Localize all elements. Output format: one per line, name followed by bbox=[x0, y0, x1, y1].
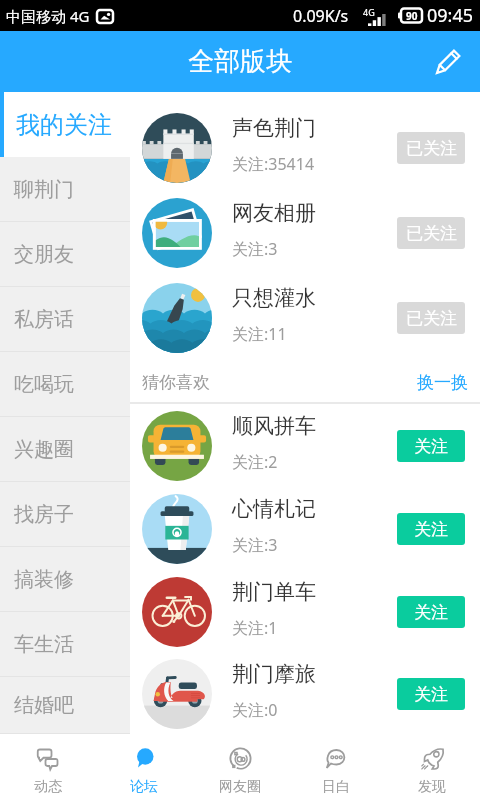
staticText: 关注:11 bbox=[232, 323, 287, 345]
button[interactable]: 我的关注 bbox=[0, 92, 130, 157]
staticText: 关注:3 bbox=[232, 534, 278, 556]
staticText: 关注 bbox=[414, 436, 448, 457]
staticText: 心情札记 bbox=[232, 496, 316, 522]
button[interactable]: 已关注 bbox=[397, 132, 465, 164]
button[interactable]: 关注 bbox=[397, 430, 465, 462]
button[interactable]: 吃喝玩 bbox=[0, 352, 130, 417]
button[interactable]: 荆门单车 bbox=[130, 570, 480, 653]
staticText: 荆门单车 bbox=[232, 579, 316, 605]
button[interactable]: 搞装修 bbox=[0, 547, 130, 612]
button[interactable]: 交朋友 bbox=[0, 222, 130, 287]
staticText: 只想灌水 bbox=[232, 285, 316, 311]
staticText: 猜你喜欢 bbox=[142, 372, 210, 393]
staticText: 关注:2 bbox=[232, 451, 278, 473]
staticText: 已关注 bbox=[406, 223, 457, 244]
staticText: 已关注 bbox=[406, 138, 457, 159]
button[interactable]: 聊荆门 bbox=[0, 157, 130, 222]
staticText: 09:45 bbox=[427, 3, 474, 28]
button[interactable]: 荆门摩旅 bbox=[130, 653, 480, 734]
staticText: 找房子 bbox=[14, 502, 74, 527]
staticText: 关注 bbox=[414, 602, 448, 623]
staticText: 动态 bbox=[34, 778, 62, 796]
staticText: 网友圈 bbox=[219, 778, 261, 796]
button[interactable]: 已关注 bbox=[397, 302, 465, 334]
staticText: 换一换 bbox=[417, 372, 468, 393]
staticText: 结婚吧 bbox=[14, 693, 74, 718]
button[interactable]: 发现 bbox=[384, 734, 480, 800]
staticText: 90 bbox=[406, 9, 418, 23]
button[interactable]: 只想灌水 bbox=[130, 275, 480, 360]
staticText: 声色荆门 bbox=[232, 115, 316, 141]
button[interactable]: 兴趣圈 bbox=[0, 417, 130, 482]
staticText: 兴趣圈 bbox=[14, 437, 74, 462]
staticText: 0.09K/s bbox=[293, 5, 349, 27]
staticText: 关注 bbox=[414, 519, 448, 540]
staticText: 全部版块 bbox=[188, 45, 292, 78]
button[interactable]: 网友圈 bbox=[192, 734, 288, 800]
staticText: 关注 bbox=[414, 684, 448, 705]
staticText: 搞装修 bbox=[14, 567, 74, 592]
button[interactable]: 动态 bbox=[0, 734, 96, 800]
button[interactable]: 结婚吧 bbox=[0, 677, 130, 734]
button[interactable]: 关注 bbox=[397, 678, 465, 710]
staticText: 交朋友 bbox=[14, 242, 74, 267]
staticText: 4G bbox=[363, 6, 375, 18]
staticText: 中国移动 4G bbox=[6, 6, 90, 26]
button[interactable]: 顺风拼车 bbox=[130, 404, 480, 487]
staticText: 关注:3 bbox=[232, 238, 278, 260]
button[interactable]: 关注 bbox=[397, 596, 465, 628]
button[interactable]: 车生活 bbox=[0, 612, 130, 677]
staticText: 论坛 bbox=[130, 778, 158, 796]
staticText: 关注:35414 bbox=[232, 153, 315, 175]
staticText: 车生活 bbox=[14, 632, 74, 657]
staticText: 私房话 bbox=[14, 307, 74, 332]
button[interactable]: 日白 bbox=[288, 734, 384, 800]
button[interactable]: 心情札记 bbox=[130, 487, 480, 570]
staticText: 网友相册 bbox=[232, 200, 316, 226]
button[interactable]: Compose post bbox=[422, 36, 474, 88]
button[interactable]: 关注 bbox=[397, 513, 465, 545]
button[interactable]: 网友相册 bbox=[130, 190, 480, 275]
staticText: 我的关注 bbox=[16, 110, 112, 140]
button[interactable]: 已关注 bbox=[397, 217, 465, 249]
staticText: 吃喝玩 bbox=[14, 372, 74, 397]
staticText: 已关注 bbox=[406, 308, 457, 329]
button[interactable]: 私房话 bbox=[0, 287, 130, 352]
staticText: 聊荆门 bbox=[14, 177, 74, 202]
staticText: 关注:0 bbox=[232, 699, 278, 721]
button[interactable]: 声色荆门 bbox=[130, 105, 480, 190]
staticText: 关注:1 bbox=[232, 617, 278, 639]
button[interactable]: 找房子 bbox=[0, 482, 130, 547]
staticText: 荆门摩旅 bbox=[232, 661, 316, 687]
button[interactable]: 换一换 bbox=[417, 372, 468, 393]
button[interactable]: 论坛 bbox=[96, 734, 192, 800]
staticText: 发现 bbox=[418, 778, 446, 796]
staticText: 日白 bbox=[322, 778, 350, 796]
staticText: 顺风拼车 bbox=[232, 413, 316, 439]
